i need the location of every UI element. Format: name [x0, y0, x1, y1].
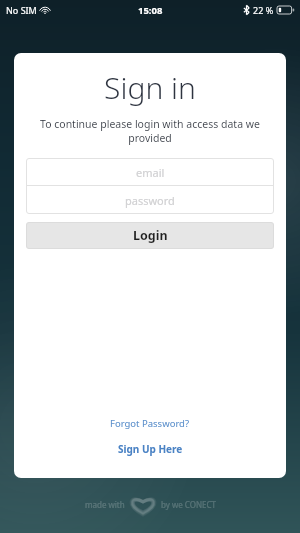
staticText: Sign in — [104, 67, 196, 108]
button[interactable]: Login — [26, 222, 274, 249]
staticText: by we CONECT — [161, 499, 216, 510]
button[interactable]: Forgot Password? — [100, 414, 200, 433]
staticText: made with — [85, 499, 125, 510]
staticText: To continue please login with access dat… — [26, 117, 274, 145]
staticText: email — [136, 165, 165, 180]
staticText: 15:08 — [138, 4, 163, 17]
button[interactable]: Sign Up Here — [108, 439, 193, 459]
staticText: Sign Up Here — [118, 442, 183, 456]
button[interactable]: password — [26, 186, 274, 214]
staticText: 22 % — [253, 4, 274, 16]
staticText: password — [125, 193, 175, 208]
staticText: Forgot Password? — [110, 417, 190, 430]
button[interactable]: email — [26, 158, 274, 186]
staticText: Login — [133, 227, 168, 244]
staticText: No SIM — [6, 4, 37, 16]
